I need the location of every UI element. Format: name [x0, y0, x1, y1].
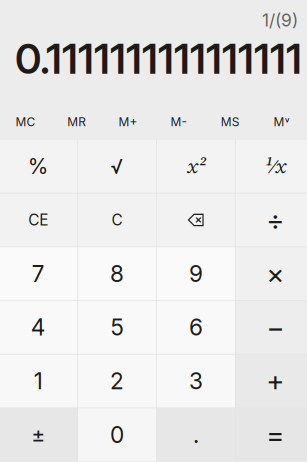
staticText: MS	[221, 114, 240, 129]
button[interactable]: 0	[78, 408, 156, 461]
staticText: ×	[266, 257, 284, 291]
button[interactable]: ×	[236, 247, 307, 300]
button[interactable]: 4	[0, 301, 77, 354]
button[interactable]: ±	[0, 408, 77, 461]
staticText: 9	[189, 260, 203, 287]
staticText: =	[266, 418, 284, 452]
staticText: C	[112, 211, 123, 229]
button[interactable]: 3	[157, 355, 235, 407]
button[interactable]: 7	[0, 247, 77, 300]
staticText: 6	[189, 314, 203, 341]
button[interactable]: 2	[78, 355, 156, 407]
button[interactable]: =	[236, 408, 307, 461]
staticText: 0.1111111111111111	[15, 34, 302, 84]
button[interactable]: 1/(9)	[0, 1, 307, 31]
staticText: MC	[16, 114, 36, 129]
button[interactable]: CE	[0, 193, 77, 246]
button[interactable]: 8	[78, 247, 156, 300]
staticText: ±	[31, 422, 45, 448]
button[interactable]: %	[0, 140, 77, 193]
button[interactable]: C	[78, 193, 156, 246]
button[interactable]: ¹⁄x	[236, 140, 307, 193]
button[interactable]: M˅	[256, 110, 307, 134]
staticText: 1	[34, 367, 43, 395]
staticText: ¹⁄x	[264, 152, 286, 180]
staticText: 5	[111, 314, 124, 341]
staticText: .	[193, 421, 199, 448]
button[interactable]: MS	[205, 110, 256, 134]
button[interactable]: ÷	[236, 193, 307, 246]
button[interactable]: MC	[0, 110, 51, 134]
button[interactable]: +	[236, 355, 307, 407]
staticText: M˅	[273, 114, 289, 129]
staticText: √	[111, 154, 124, 178]
staticText: M-	[171, 114, 188, 129]
button[interactable]: 9	[157, 247, 235, 300]
staticText: 0	[110, 421, 124, 448]
staticText: 7	[32, 260, 45, 287]
staticText: 2	[110, 367, 124, 395]
staticText: %	[28, 153, 49, 179]
staticText: 4	[31, 314, 46, 341]
button[interactable]: √	[78, 140, 156, 193]
staticText: +	[266, 364, 284, 398]
button[interactable]: 1	[0, 355, 77, 407]
button[interactable]: .	[157, 408, 235, 461]
staticText: 3	[189, 367, 203, 395]
button[interactable]: 5	[78, 301, 156, 354]
button[interactable]: 6	[157, 301, 235, 354]
button[interactable]: x²	[157, 140, 235, 193]
staticText: 8	[110, 260, 124, 287]
button[interactable]	[157, 193, 235, 246]
button[interactable]: −	[236, 301, 307, 354]
staticText: MR	[67, 114, 86, 129]
staticText: x²	[187, 152, 205, 180]
button[interactable]: MR	[51, 110, 102, 134]
staticText: −	[266, 310, 284, 344]
staticText: M+	[118, 114, 137, 129]
button[interactable]: M-	[153, 110, 205, 134]
staticText: 1/(9)	[262, 10, 298, 31]
staticText: ÷	[266, 203, 284, 237]
staticText: CE	[28, 211, 48, 229]
button[interactable]: M+	[102, 110, 153, 134]
